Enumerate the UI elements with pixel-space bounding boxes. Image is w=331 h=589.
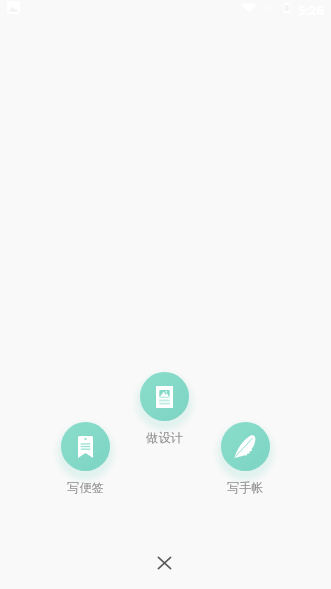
button[interactable]: 写便签 <box>61 422 110 471</box>
button[interactable]: Close <box>148 546 181 579</box>
staticText: 写手帐 <box>211 480 280 495</box>
button[interactable]: 写手帐 <box>221 422 270 471</box>
staticText: 做设计 <box>130 430 199 445</box>
staticText: 写便签 <box>51 480 120 495</box>
button[interactable]: 做设计 <box>140 372 189 421</box>
